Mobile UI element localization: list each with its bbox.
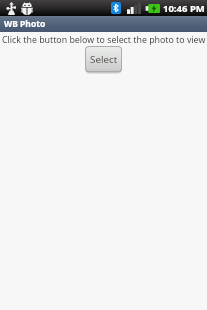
staticText: 10:46 PM <box>163 2 205 15</box>
staticText: WB Photo <box>4 18 46 30</box>
staticText: Select <box>90 53 118 66</box>
staticText: Click the button below to select the pho… <box>2 34 207 46</box>
button[interactable]: Select <box>85 46 122 73</box>
